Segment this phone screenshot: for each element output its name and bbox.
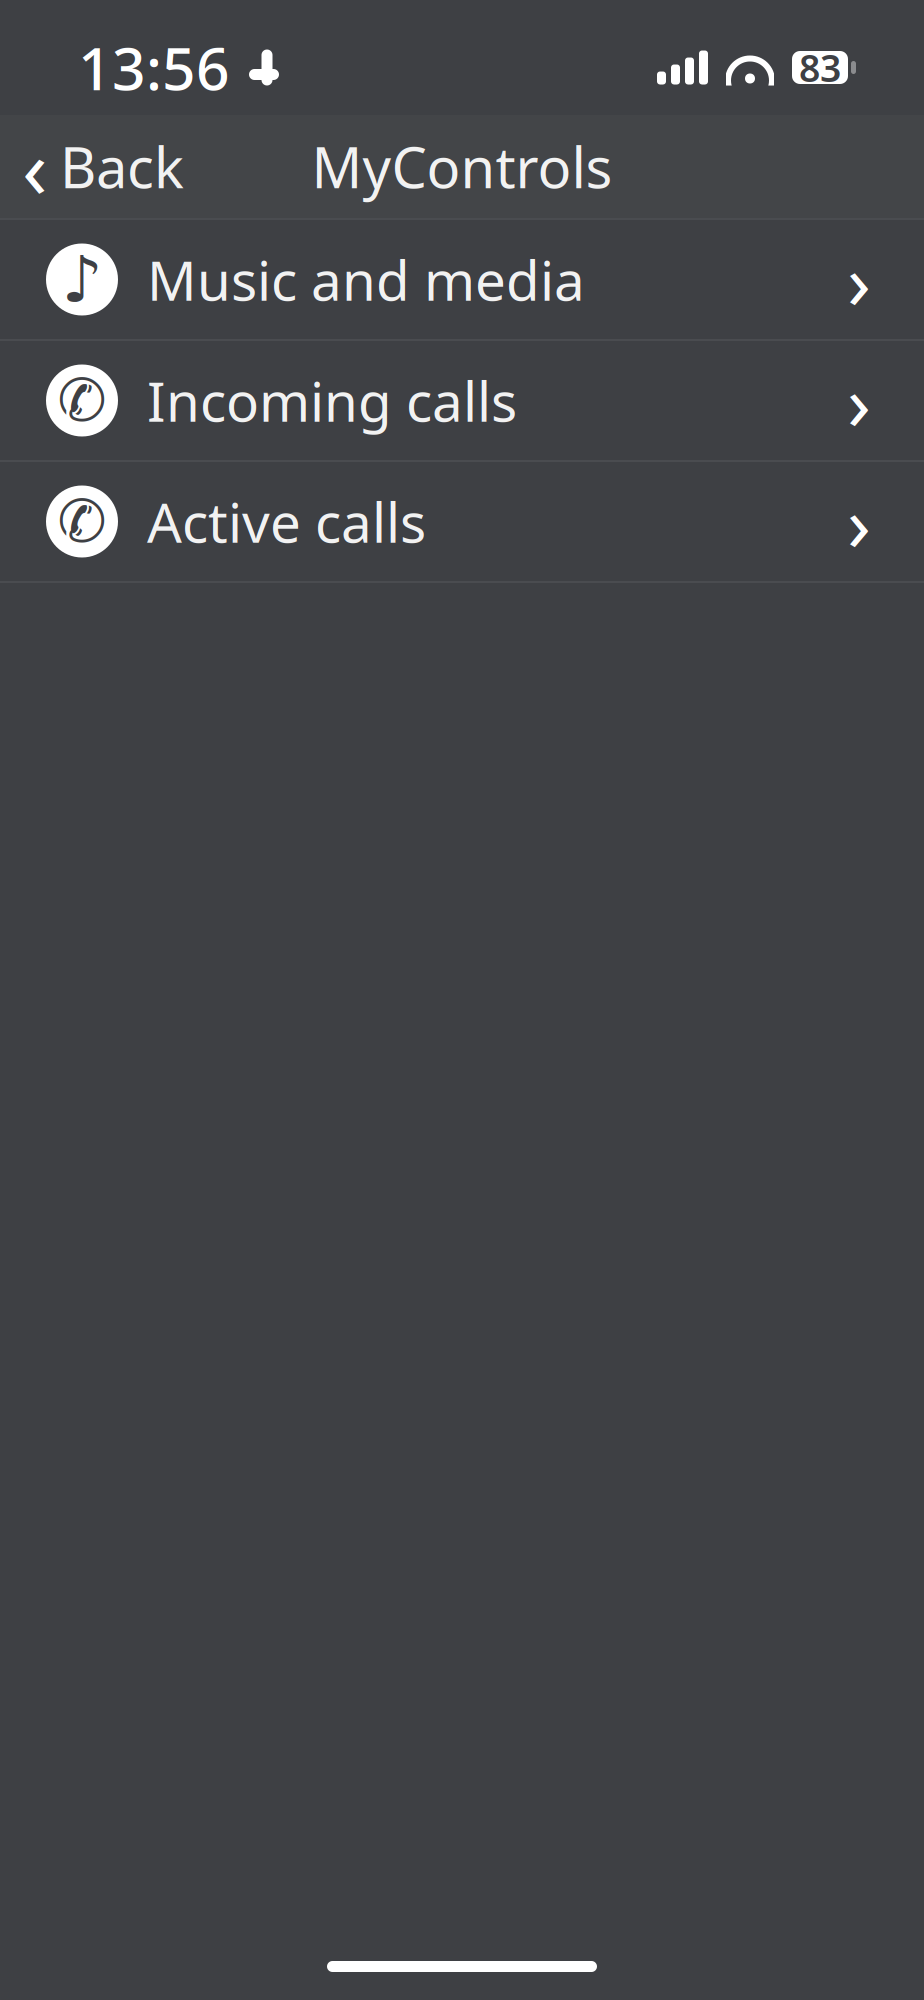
staticText: MyControls	[311, 129, 612, 204]
staticText: ›	[847, 228, 871, 331]
staticText: Incoming calls	[147, 364, 517, 437]
staticText: ›	[847, 349, 871, 452]
button[interactable]: ✆	[0, 341, 924, 460]
staticText: Music and media	[147, 243, 585, 316]
button[interactable]: ♪	[0, 220, 924, 339]
staticText: ✆	[57, 488, 106, 555]
staticText: ♪	[61, 243, 102, 316]
staticText: ›	[847, 470, 871, 573]
staticText: ‹	[22, 112, 48, 221]
staticText: ✆	[57, 367, 106, 434]
staticText: Active calls	[147, 485, 426, 558]
staticText: 83	[799, 43, 841, 92]
button[interactable]: ✆	[0, 462, 924, 581]
staticText: Back	[60, 129, 184, 204]
staticText: 13:56	[78, 28, 230, 106]
button[interactable]: ‹	[0, 113, 208, 220]
